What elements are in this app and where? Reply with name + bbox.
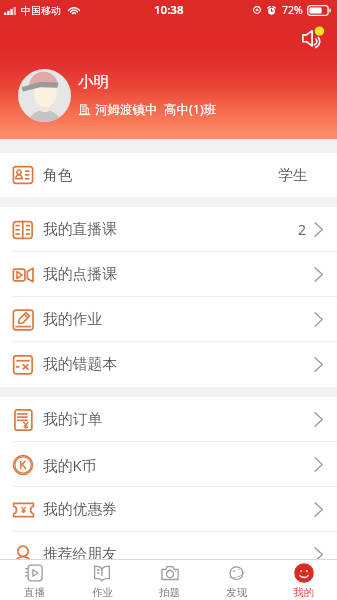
staticText: 我的作业 xyxy=(43,310,103,329)
staticText: 我的 xyxy=(293,586,314,599)
staticText: 作业 xyxy=(92,586,113,599)
staticText: 推荐给朋友 xyxy=(43,545,117,564)
button[interactable]: 我的 xyxy=(270,560,337,599)
button[interactable]: 我的K币 xyxy=(0,442,337,487)
staticText: 我的错题本 xyxy=(43,355,117,374)
button[interactable]: Avatar xyxy=(18,69,71,122)
button[interactable]: 我的优惠券 xyxy=(0,487,337,532)
button[interactable]: 角色 xyxy=(0,153,337,197)
staticText: 我的优惠券 xyxy=(43,500,117,519)
staticText: 我的直播课 xyxy=(43,220,117,239)
staticText: 小明 xyxy=(78,72,109,92)
staticText: 我的K币 xyxy=(43,455,97,475)
staticText: 我的点播课 xyxy=(43,265,117,284)
button[interactable]: 我的订单 xyxy=(0,397,337,442)
staticText: 直播 xyxy=(24,586,45,599)
staticText: 中国移动 xyxy=(21,4,61,17)
staticText: 2 xyxy=(298,220,307,239)
staticText: 我的订单 xyxy=(43,410,103,429)
button[interactable]: 我的直播课 xyxy=(0,207,337,252)
button[interactable]: 我的错题本 xyxy=(0,342,337,387)
staticText: 发现 xyxy=(226,586,247,599)
button[interactable]: Announcements xyxy=(298,23,328,53)
staticText: 72% xyxy=(282,3,303,17)
button[interactable]: 我的作业 xyxy=(0,297,337,342)
button[interactable]: 作业 xyxy=(68,560,136,599)
staticText: 10:38 xyxy=(154,2,184,18)
button[interactable]: 拍题 xyxy=(136,560,203,599)
staticText: 河姆渡镇中 高中(1)班 xyxy=(95,101,217,118)
staticText: 学生 xyxy=(278,166,308,185)
staticText: 角色 xyxy=(43,166,73,185)
staticText: 拍题 xyxy=(159,586,180,599)
button[interactable]: 发现 xyxy=(203,560,270,599)
button[interactable]: 我的点播课 xyxy=(0,252,337,297)
button[interactable]: 直播 xyxy=(0,560,68,599)
button[interactable]: 推荐给朋友 xyxy=(0,532,337,577)
